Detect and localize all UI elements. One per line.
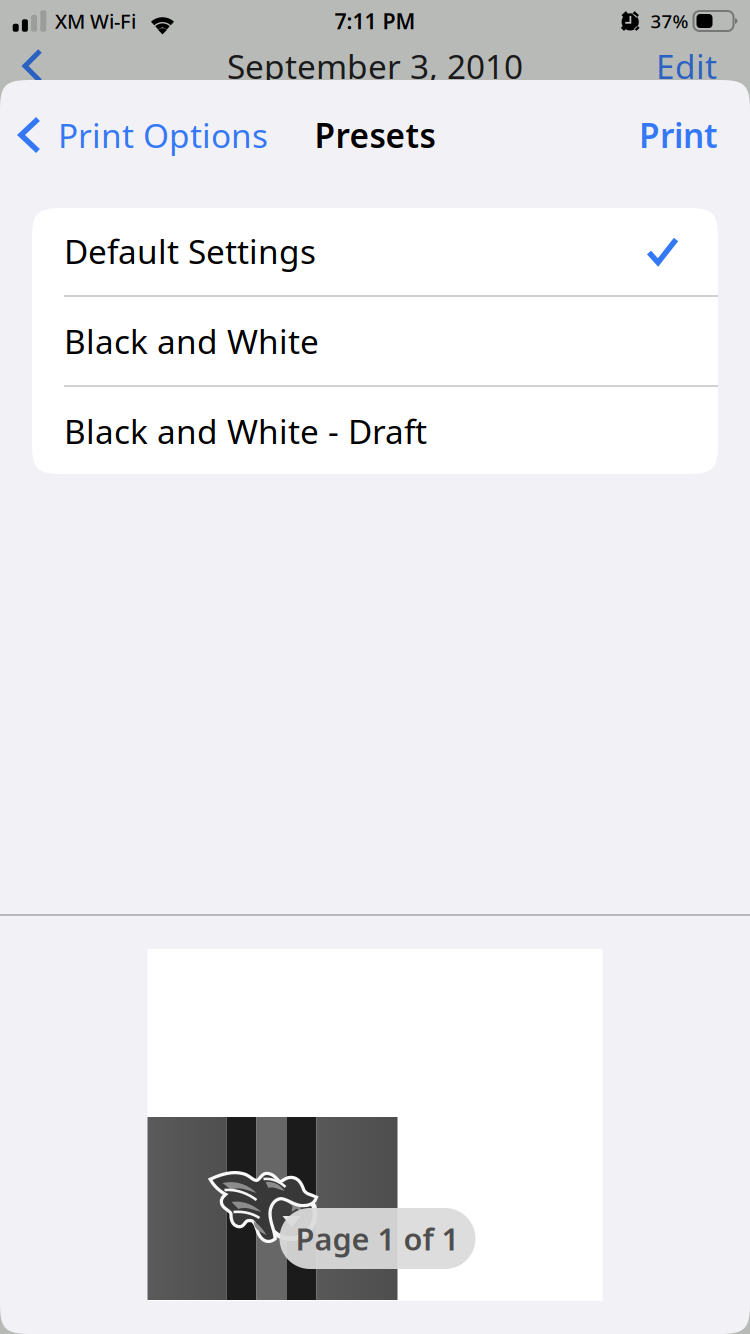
staticText: XM Wi-Fi: [55, 8, 136, 34]
button[interactable]: Print Options: [0, 105, 268, 165]
staticText: September 3, 2010: [227, 44, 523, 88]
staticText: Black and White: [64, 319, 319, 363]
staticText: 7:11 PM: [334, 7, 415, 35]
button[interactable]: Print: [639, 105, 750, 165]
staticText: Black and White - Draft: [64, 409, 427, 453]
staticText: Page 1 of 1: [295, 1218, 459, 1259]
staticText: Print Options: [58, 113, 268, 157]
staticText: Presets: [314, 113, 435, 157]
staticText: Edit: [656, 44, 717, 88]
button[interactable]: Black and White: [32, 296, 718, 385]
staticText: Print: [639, 113, 718, 157]
staticText: Default Settings: [64, 229, 316, 273]
button[interactable]: Black and White - Draft: [32, 386, 718, 475]
button[interactable]: Default Settings: [32, 206, 718, 295]
staticText: 37%: [650, 9, 688, 33]
